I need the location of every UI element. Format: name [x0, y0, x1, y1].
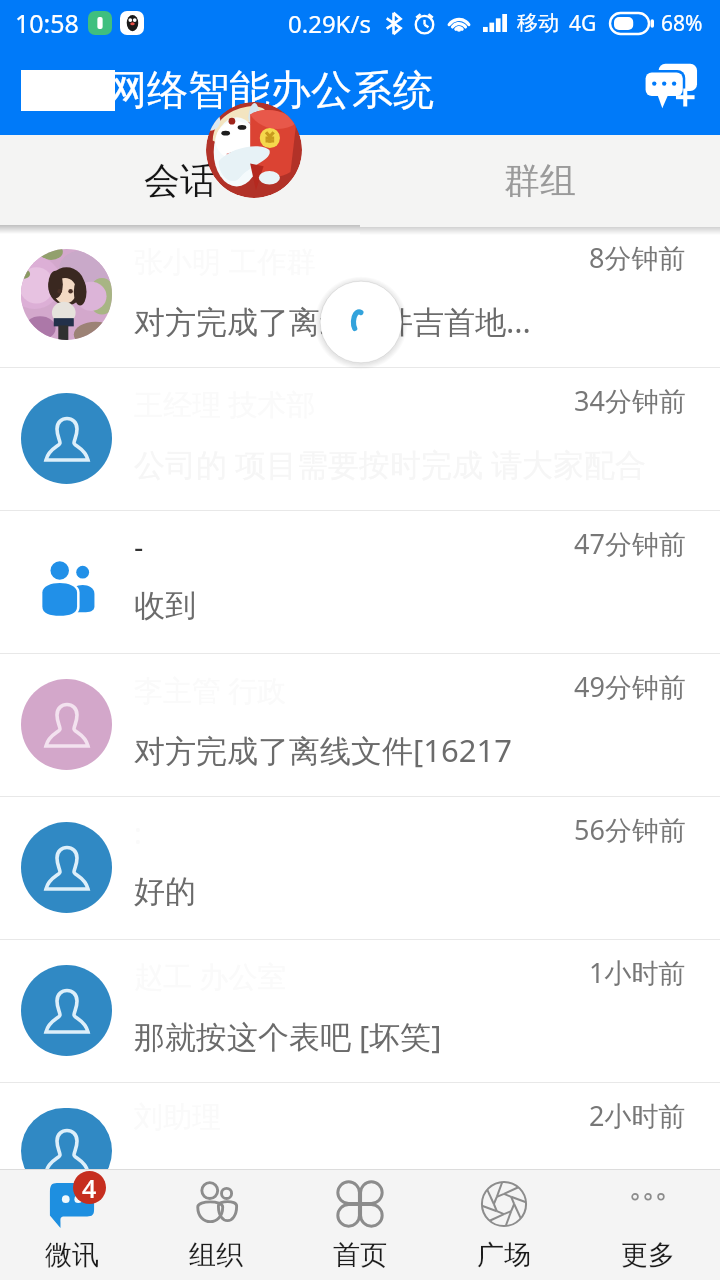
- button[interactable]: 广场: [432, 1170, 576, 1280]
- staticText: 47分钟前: [574, 525, 686, 562]
- staticText: 组织: [189, 1238, 243, 1272]
- button[interactable]: 王经理 技术部: [0, 368, 720, 510]
- staticText: 移动: [517, 10, 559, 36]
- staticText: 8分钟前: [589, 239, 686, 276]
- button[interactable]: 组织: [144, 1170, 288, 1280]
- button[interactable]: New chat: [626, 46, 716, 135]
- button[interactable]: 赵工 办公室: [0, 940, 720, 1082]
- staticText: 好的: [134, 872, 196, 911]
- button[interactable]: 群组: [360, 135, 720, 225]
- staticText: 那就按这个表吧 [坏笑]: [134, 1015, 442, 1057]
- button[interactable]: 李主管 行政: [0, 654, 720, 796]
- staticText: 56分钟前: [574, 811, 686, 848]
- staticText: 公司的 项目需要按时完成 请大家配合: [134, 443, 647, 485]
- staticText: 0.29K/s: [288, 7, 371, 40]
- staticText: -: [134, 527, 144, 566]
- staticText: 4G: [569, 9, 597, 38]
- staticText: 群组: [504, 158, 576, 203]
- staticText: 2小时前: [589, 1097, 686, 1134]
- staticText: 收到: [134, 586, 196, 625]
- staticText: 会话: [144, 158, 216, 203]
- button[interactable]: -: [0, 511, 720, 653]
- staticText: 4: [82, 1171, 97, 1204]
- staticText: 49分钟前: [574, 668, 686, 705]
- button[interactable]: 会话: [0, 135, 360, 225]
- button[interactable]: 首页: [288, 1170, 432, 1280]
- staticText: 智慧网络智能办公系统: [24, 65, 434, 117]
- staticText: 34分钟前: [574, 382, 686, 419]
- staticText: 68%: [661, 9, 703, 38]
- staticText: 1小时前: [589, 954, 686, 991]
- button[interactable]: 更多: [576, 1170, 720, 1280]
- staticText: 广场: [477, 1238, 531, 1272]
- button[interactable]: 张小明 工作群: [0, 225, 720, 367]
- staticText: 更多: [621, 1238, 675, 1272]
- staticText: 10:58: [15, 6, 79, 40]
- staticText: 首页: [333, 1238, 387, 1272]
- button[interactable]: :: [0, 797, 720, 939]
- button[interactable]: 4: [0, 1170, 144, 1280]
- staticText: 对方完成了离线文件吉首地...: [134, 300, 531, 342]
- staticText: 对方完成了离线文件[16217: [134, 729, 512, 771]
- staticText: 微讯: [45, 1238, 99, 1272]
- button[interactable]: 刘助理: [0, 1083, 720, 1169]
